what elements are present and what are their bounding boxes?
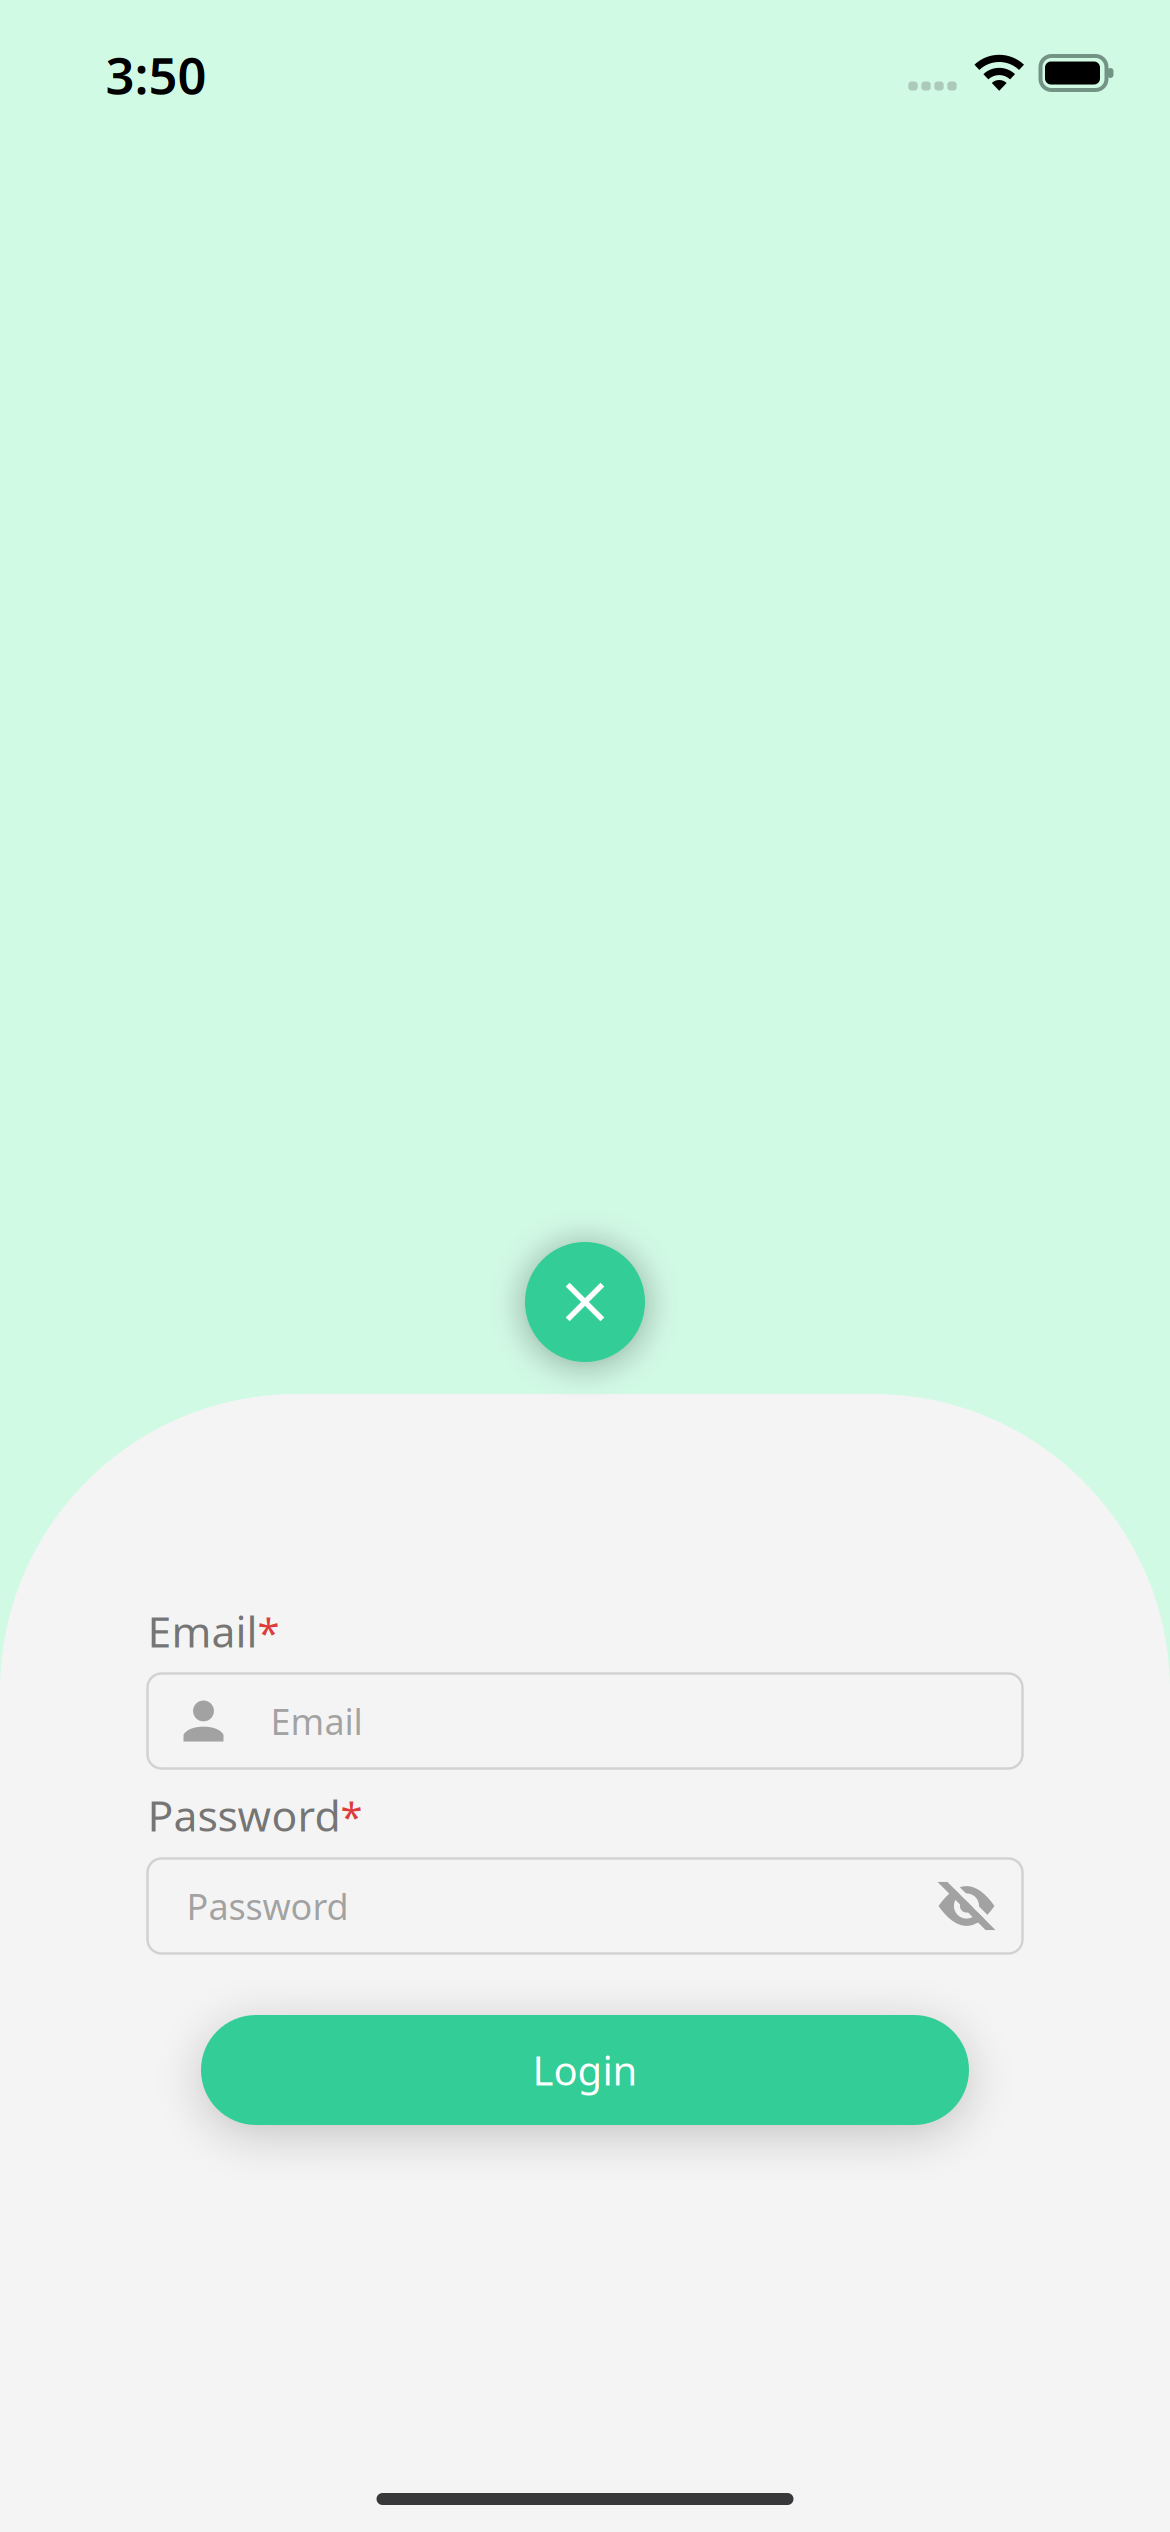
staticText: 3:50 bbox=[105, 41, 206, 108]
staticText: * bbox=[257, 1605, 279, 1659]
button[interactable]: Email bbox=[147, 1673, 1022, 1768]
staticText: Email bbox=[270, 1697, 362, 1745]
button[interactable]: Close bbox=[525, 1242, 645, 1362]
button[interactable]: Password bbox=[147, 1858, 1022, 1953]
button[interactable]: Show password bbox=[933, 1873, 999, 1939]
staticText: Login bbox=[532, 2043, 637, 2096]
staticText: Email bbox=[147, 1603, 257, 1659]
staticText: Password bbox=[186, 1882, 348, 1930]
button[interactable]: Login bbox=[201, 2015, 969, 2125]
staticText: * bbox=[340, 1789, 362, 1843]
staticText: Password bbox=[147, 1787, 340, 1843]
